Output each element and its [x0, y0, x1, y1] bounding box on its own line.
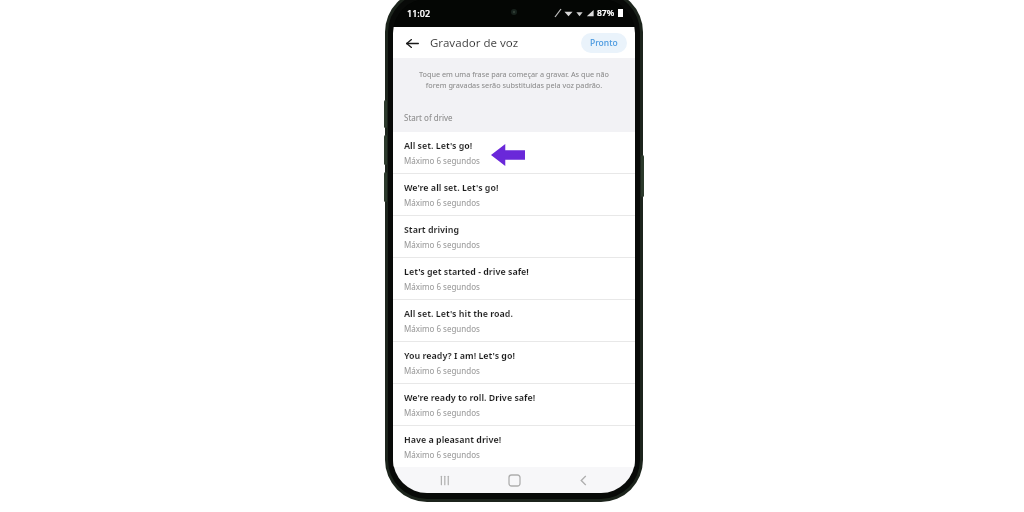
- staticText: Start of drive: [404, 112, 453, 123]
- staticText: Start driving: [404, 224, 460, 236]
- staticText: All set. Let's hit the road.: [404, 308, 513, 320]
- staticText: Máximo 6 segundos: [404, 239, 480, 250]
- staticText: Have a pleasant drive!: [404, 434, 502, 446]
- staticText: All set. Let's go!: [404, 140, 473, 152]
- button[interactable]: Recent apps: [428, 467, 462, 493]
- button[interactable]: Pronto: [581, 33, 627, 53]
- staticText: Gravador de voz: [430, 35, 519, 51]
- button[interactable]: Start driving: [393, 216, 635, 257]
- staticText: Máximo 6 segundos: [404, 281, 480, 292]
- staticText: We're ready to roll. Drive safe!: [404, 392, 536, 404]
- staticText: Máximo 6 segundos: [404, 155, 480, 166]
- button[interactable]: Back: [399, 30, 425, 56]
- button[interactable]: All set. Let's hit the road.: [393, 300, 635, 341]
- button[interactable]: Back: [566, 467, 600, 493]
- button[interactable]: Let's get started - drive safe!: [393, 258, 635, 299]
- staticText: Máximo 6 segundos: [404, 449, 480, 460]
- staticText: Máximo 6 segundos: [404, 407, 480, 418]
- button[interactable]: All set. Let's go!: [393, 132, 635, 173]
- button[interactable]: We're all set. Let's go!: [393, 174, 635, 215]
- staticText: Pronto: [590, 37, 618, 49]
- staticText: 87%: [597, 7, 615, 19]
- staticText: Máximo 6 segundos: [404, 365, 480, 376]
- staticText: Let's get started - drive safe!: [404, 266, 529, 278]
- button[interactable]: Have a pleasant drive!: [393, 426, 635, 467]
- staticText: 11:02: [407, 7, 431, 19]
- button[interactable]: You ready? I am! Let's go!: [393, 342, 635, 383]
- staticText: Máximo 6 segundos: [404, 323, 480, 334]
- staticText: Toque em uma frase para começar a gravar…: [414, 69, 614, 90]
- staticText: You ready? I am! Let's go!: [404, 350, 515, 362]
- staticText: Máximo 6 segundos: [404, 197, 480, 208]
- button[interactable]: Home: [497, 467, 531, 493]
- staticText: We're all set. Let's go!: [404, 182, 499, 194]
- button[interactable]: We're ready to roll. Drive safe!: [393, 384, 635, 425]
